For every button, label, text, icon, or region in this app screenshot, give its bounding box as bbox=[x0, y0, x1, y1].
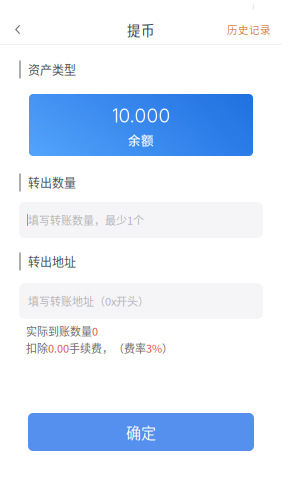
staticText: 3% bbox=[146, 340, 162, 356]
staticText: 填写转账地址（0x开头） bbox=[28, 293, 149, 309]
staticText: 确定 bbox=[126, 421, 156, 443]
button[interactable]: 返回 bbox=[0, 14, 36, 45]
staticText: 填写转账数量，最少1个 bbox=[28, 212, 144, 228]
staticText: ） bbox=[162, 340, 173, 356]
staticText: 转出地址 bbox=[28, 253, 76, 270]
staticText: 0 bbox=[92, 323, 98, 339]
staticText: 转出数量 bbox=[28, 174, 76, 191]
staticText: 手续费，（费率 bbox=[69, 340, 146, 356]
staticText: 提币 bbox=[127, 20, 155, 39]
button[interactable]: 历史记录 bbox=[221, 14, 277, 45]
button[interactable]: 填写转账地址（0x开头） bbox=[19, 283, 263, 319]
button[interactable]: 填写转账数量，最少1个 bbox=[19, 202, 263, 238]
staticText: 10.000 bbox=[111, 104, 170, 127]
staticText: 实际到账数量 bbox=[26, 323, 92, 339]
staticText: 资产类型 bbox=[28, 61, 76, 78]
staticText: 余额 bbox=[128, 131, 154, 149]
staticText: 历史记录 bbox=[227, 22, 271, 37]
staticText: 0.00 bbox=[48, 340, 69, 356]
staticText: 扣除 bbox=[26, 340, 48, 356]
button[interactable]: 确定 bbox=[28, 413, 254, 451]
